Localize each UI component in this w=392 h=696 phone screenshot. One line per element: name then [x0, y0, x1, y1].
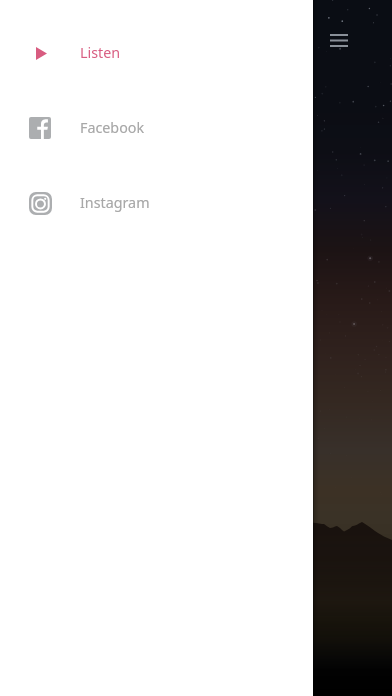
staticText: Instagram — [80, 193, 150, 212]
staticText: Listen — [80, 43, 121, 62]
button[interactable]: Open navigation menu — [317, 18, 361, 62]
button[interactable]: Instagram — [0, 179, 313, 227]
staticText: Facebook — [80, 118, 145, 137]
button[interactable]: Listen — [0, 29, 313, 77]
button[interactable]: Facebook — [0, 104, 313, 152]
